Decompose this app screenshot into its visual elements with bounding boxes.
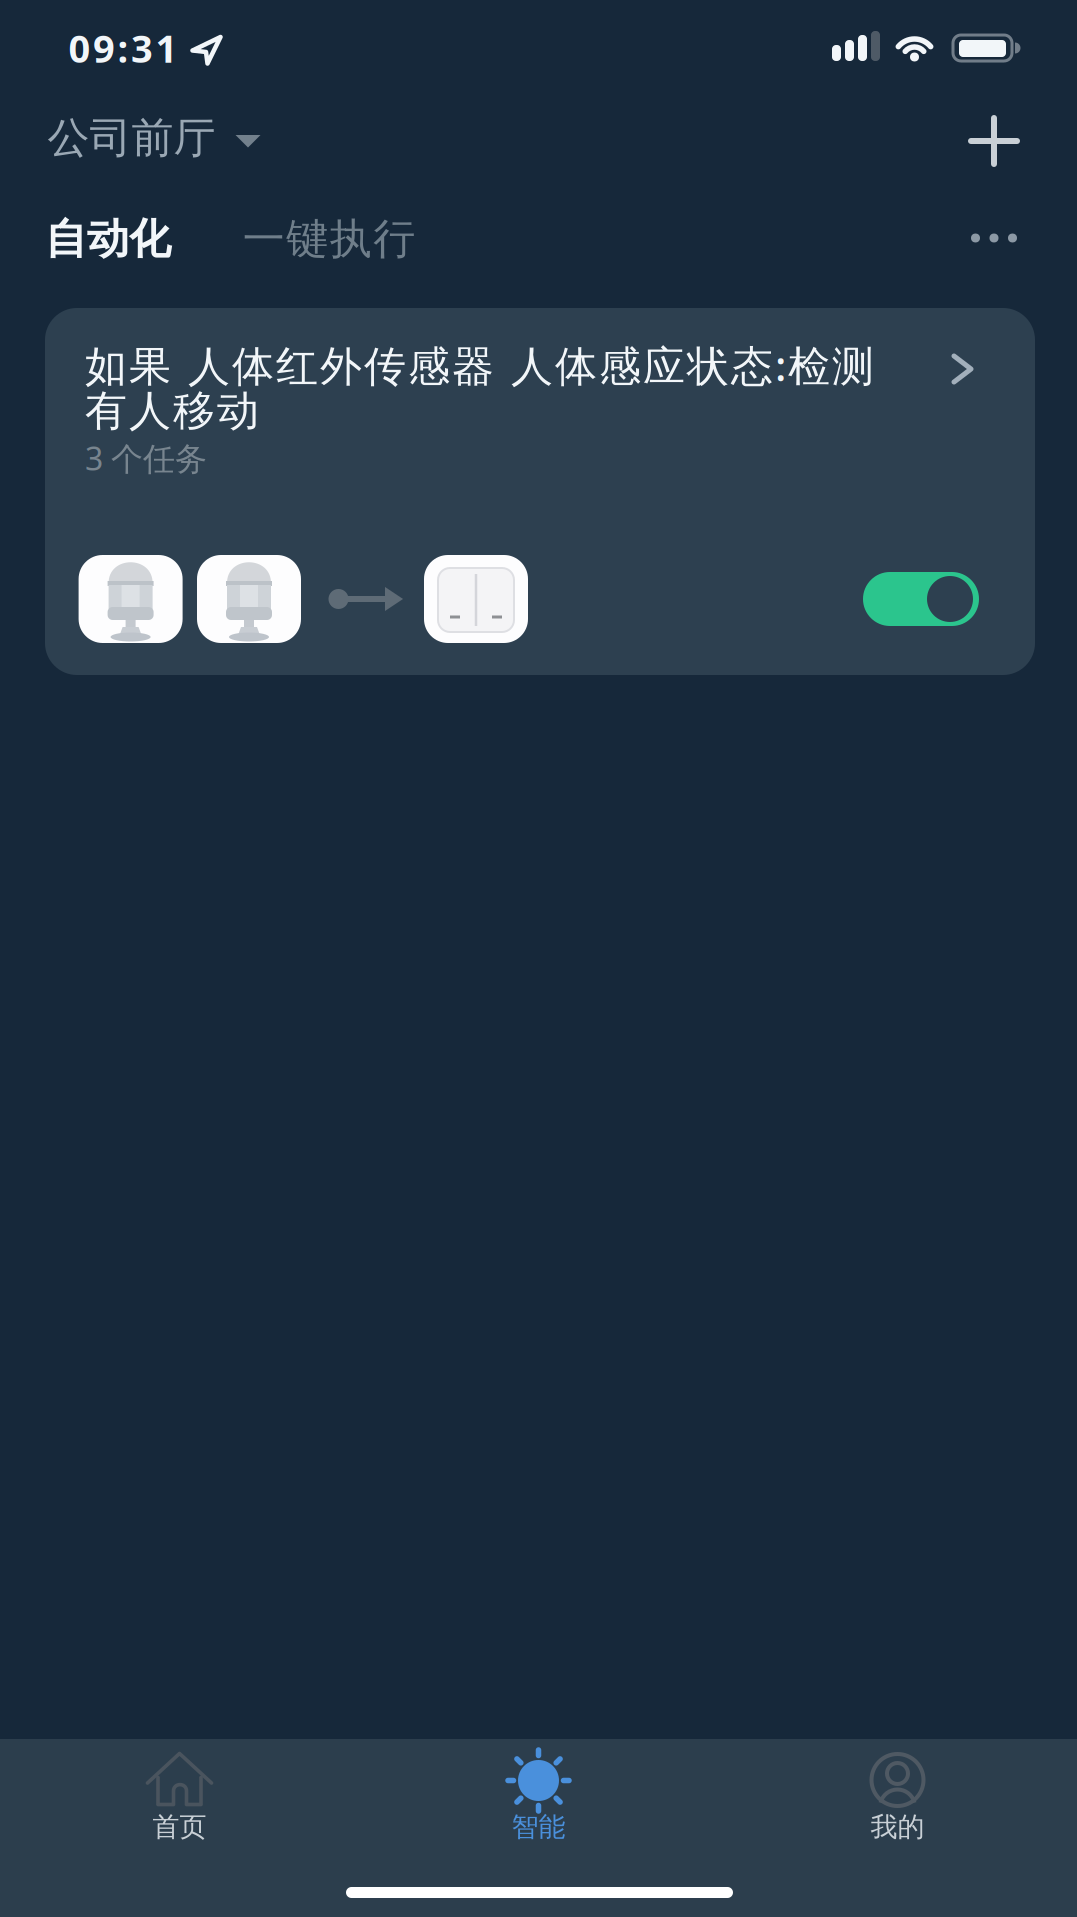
staticText: 09:31	[68, 22, 177, 74]
staticText: 一键执行	[243, 212, 415, 265]
button[interactable]: 公司前厅	[47, 111, 260, 164]
staticText: 自动化	[45, 212, 171, 265]
button[interactable]: Add	[968, 115, 1020, 167]
staticText: 公司前厅	[47, 111, 215, 164]
button[interactable]: 如果 人体红外传感器 人体感应状态:检测	[45, 308, 1035, 675]
staticText: 3 个任务	[85, 436, 207, 480]
button[interactable]: 一键执行	[243, 212, 415, 265]
staticText: 首页	[152, 1810, 206, 1844]
staticText: 智能	[511, 1810, 565, 1844]
button[interactable]: Toggle	[863, 572, 979, 626]
button[interactable]: 自动化	[45, 212, 171, 265]
staticText: 如果 人体红外传感器 人体感应状态:检测	[85, 336, 874, 394]
button[interactable]: 我的	[718, 1739, 1077, 1917]
staticText: 有人移动	[85, 384, 259, 437]
button[interactable]: 首页	[0, 1739, 359, 1917]
button[interactable]: More	[971, 233, 1017, 242]
staticText: 我的	[870, 1810, 924, 1844]
button[interactable]: 智能	[359, 1739, 718, 1917]
